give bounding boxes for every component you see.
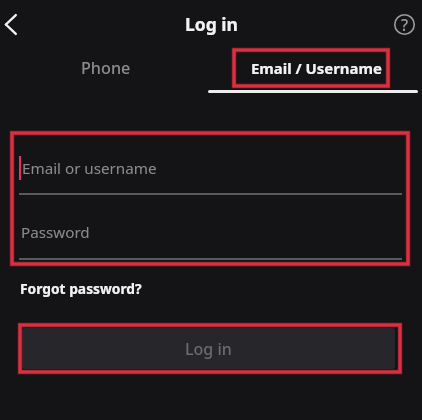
staticText: Email or username <box>22 158 157 179</box>
staticText: Forgot password? <box>20 279 142 298</box>
staticText: ? <box>401 14 409 36</box>
staticText: Phone <box>81 57 131 79</box>
button[interactable]: Email or username <box>19 145 402 190</box>
button[interactable]: Back <box>0 6 28 42</box>
staticText: Password <box>21 222 90 243</box>
button[interactable]: Phone <box>0 46 211 90</box>
staticText: Log in <box>185 338 232 360</box>
button[interactable]: Password <box>19 210 402 255</box>
button[interactable]: Forgot password? <box>20 279 142 298</box>
button[interactable]: Log in <box>22 328 395 369</box>
staticText: Email / Username <box>251 58 382 78</box>
button[interactable]: Help <box>386 6 422 43</box>
staticText: Log in <box>185 12 238 36</box>
button[interactable]: Email / Username <box>211 46 422 90</box>
